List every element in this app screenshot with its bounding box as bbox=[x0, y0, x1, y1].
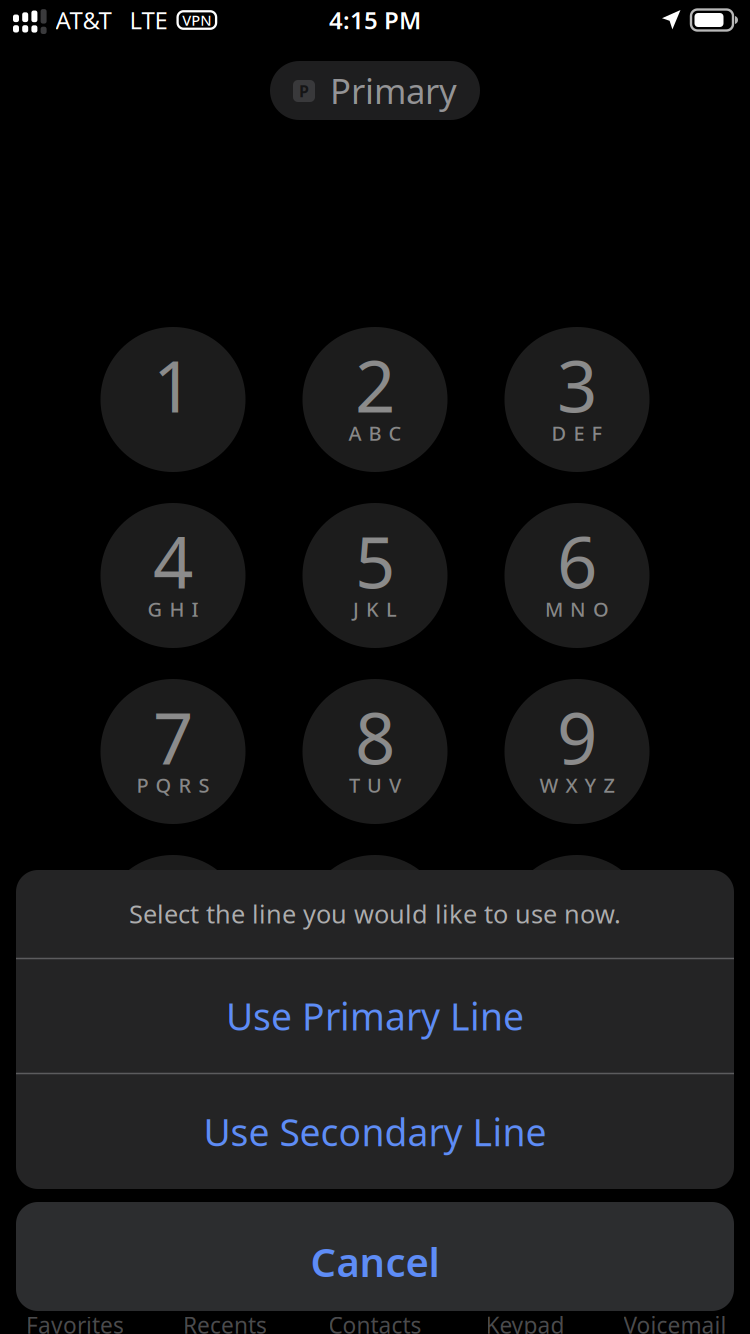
button[interactable]: 2 bbox=[302, 327, 447, 472]
staticText: 0 bbox=[355, 866, 395, 960]
staticText: VPN bbox=[182, 10, 211, 30]
staticText: 7 bbox=[153, 690, 193, 784]
staticText: 4 bbox=[153, 514, 193, 608]
button[interactable]: 1 bbox=[100, 327, 245, 472]
button[interactable]: 6 bbox=[504, 503, 649, 648]
button[interactable]: * bbox=[100, 855, 245, 1000]
staticText: G H I bbox=[147, 596, 198, 622]
staticText: Select the line you would like to use no… bbox=[129, 897, 621, 930]
button[interactable]: Cancel bbox=[16, 1202, 734, 1311]
button[interactable]: 0 bbox=[302, 855, 447, 1000]
staticText: 3 bbox=[557, 338, 597, 432]
button[interactable]: 7 bbox=[100, 679, 245, 824]
staticText: P bbox=[299, 80, 309, 102]
staticText: J K L bbox=[353, 596, 397, 622]
staticText: Keypad bbox=[485, 1310, 564, 1334]
staticText: + bbox=[369, 948, 380, 974]
staticText: D E F bbox=[551, 420, 602, 446]
staticText: Primary bbox=[330, 67, 457, 113]
button[interactable]: Contacts bbox=[300, 1308, 450, 1334]
button[interactable]: Keypad bbox=[450, 1308, 600, 1334]
button[interactable]: 5 bbox=[302, 503, 447, 648]
button[interactable]: 9 bbox=[504, 679, 649, 824]
button[interactable]: 4 bbox=[100, 503, 245, 648]
staticText: A B C bbox=[348, 420, 401, 446]
staticText: 1 bbox=[153, 338, 193, 432]
staticText: W X Y Z bbox=[539, 772, 614, 798]
staticText: LTE bbox=[130, 4, 168, 36]
staticText: 8 bbox=[355, 690, 395, 784]
staticText: Use Primary Line bbox=[226, 991, 524, 1041]
staticText: M N O bbox=[545, 596, 609, 622]
button[interactable]: Use Primary Line bbox=[16, 959, 734, 1073]
staticText: Favorites bbox=[26, 1310, 124, 1334]
staticText: 6 bbox=[557, 514, 597, 608]
staticText: T U V bbox=[349, 772, 401, 798]
staticText: AT&T bbox=[56, 4, 112, 36]
staticText: Cancel bbox=[310, 1235, 439, 1288]
staticText: Use Secondary Line bbox=[203, 1107, 546, 1157]
staticText: 5 bbox=[355, 514, 395, 608]
staticText: # bbox=[554, 866, 600, 960]
staticText: Voicemail bbox=[623, 1310, 726, 1334]
button[interactable]: Use Secondary Line bbox=[16, 1074, 734, 1189]
staticText: Contacts bbox=[328, 1310, 421, 1334]
staticText: Recents bbox=[183, 1310, 267, 1334]
button[interactable]: Voicemail bbox=[600, 1308, 750, 1334]
button[interactable]: 8 bbox=[302, 679, 447, 824]
button[interactable]: Favorites bbox=[0, 1308, 150, 1334]
button[interactable]: 3 bbox=[504, 327, 649, 472]
button[interactable]: P bbox=[270, 61, 480, 120]
button[interactable]: # bbox=[504, 855, 649, 1000]
staticText: * bbox=[153, 866, 192, 960]
button[interactable]: Recents bbox=[150, 1308, 300, 1334]
staticText: 9 bbox=[557, 690, 597, 784]
staticText: 2 bbox=[355, 338, 395, 432]
staticText: 4:15 PM bbox=[329, 4, 421, 36]
staticText: P Q R S bbox=[136, 772, 209, 798]
